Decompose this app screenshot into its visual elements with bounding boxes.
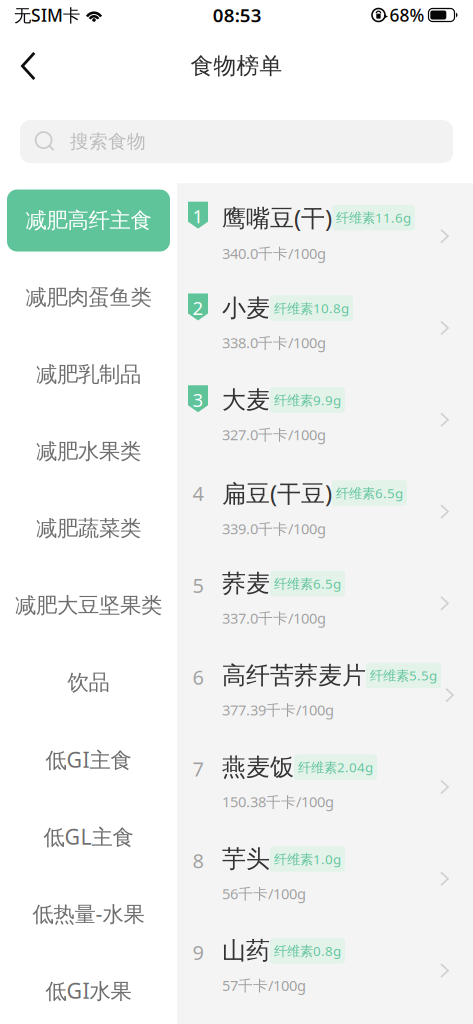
staticText: 搜索食物	[70, 130, 146, 153]
staticText: 饮品	[67, 669, 109, 696]
staticText: 150.38千卡/100g	[222, 792, 334, 811]
staticText: 340.0千卡/100g	[222, 243, 326, 263]
staticText: 377.39千卡/100g	[222, 700, 334, 720]
staticText: 纤维素5.5g	[370, 666, 437, 684]
button[interactable]: 减肥水果类	[0, 413, 177, 490]
staticText: 荞麦	[222, 569, 270, 598]
staticText: 339.0千卡/100g	[222, 519, 326, 538]
staticText: 337.0千卡/100g	[222, 608, 326, 628]
button[interactable]: 低GI主食	[0, 721, 177, 798]
staticText: 低GI水果	[45, 976, 131, 1005]
staticText: 燕麦饭	[222, 752, 294, 782]
staticText: 纤维素11.6g	[336, 209, 411, 226]
button[interactable]: 减肥蔬菜类	[0, 490, 177, 567]
staticText: 4	[192, 480, 203, 507]
button[interactable]: 8	[177, 844, 473, 936]
button[interactable]: 返回	[0, 40, 54, 91]
staticText: 减肥高纤主食	[25, 207, 151, 234]
staticText: 减肥蔬菜类	[36, 515, 141, 542]
staticText: 低热量-水果	[32, 899, 144, 928]
staticText: 纤维素6.5g	[274, 575, 341, 592]
button[interactable]: 减肥肉蛋鱼类	[0, 259, 177, 336]
button[interactable]: 9	[177, 936, 473, 1024]
staticText: 7	[192, 755, 203, 782]
staticText: 食物榜单	[190, 52, 282, 80]
button[interactable]: 2	[177, 293, 473, 385]
staticText: 纤维素1.0g	[274, 850, 341, 868]
button[interactable]: 6	[177, 661, 473, 752]
button[interactable]: 减肥高纤主食	[0, 182, 177, 259]
staticText: 2	[192, 295, 203, 320]
staticText: 鹰嘴豆(干)	[222, 202, 332, 234]
staticText: 57千卡/100g	[222, 975, 306, 995]
staticText: 小麦	[222, 293, 270, 323]
button[interactable]: 3	[177, 385, 473, 477]
staticText: 扁豆(干豆)	[222, 477, 332, 509]
staticText: 高纤苦荞麦片	[222, 661, 366, 690]
staticText: 纤维素9.9g	[274, 391, 341, 409]
staticText: 5	[192, 572, 203, 598]
staticText: 纤维素0.8g	[274, 942, 341, 960]
staticText: 低GI主食	[45, 745, 131, 774]
staticText: 减肥乳制品	[36, 361, 141, 388]
staticText: 68%	[389, 3, 424, 26]
staticText: 纤维素2.04g	[298, 758, 373, 776]
button[interactable]: 减肥乳制品	[0, 336, 177, 413]
staticText: 纤维素10.8g	[274, 299, 349, 317]
staticText: 低GL主食	[43, 822, 133, 851]
button[interactable]: 减肥大豆坚果类	[0, 567, 177, 644]
staticText: 9	[192, 939, 203, 966]
staticText: 338.0千卡/100g	[222, 333, 326, 352]
staticText: 芋头	[222, 844, 270, 874]
staticText: 8	[192, 847, 203, 874]
staticText: 6	[192, 664, 203, 690]
button[interactable]: 4	[177, 477, 473, 569]
button[interactable]: 饮品	[0, 644, 177, 721]
staticText: 山药	[222, 936, 270, 965]
staticText: 纤维素6.5g	[336, 484, 403, 502]
staticText: 3	[192, 387, 203, 412]
staticText: 08:53	[213, 3, 262, 27]
staticText: 减肥大豆坚果类	[15, 592, 162, 619]
button[interactable]: 1	[177, 202, 473, 293]
staticText: 56千卡/100g	[222, 884, 306, 903]
staticText: 减肥肉蛋鱼类	[25, 284, 151, 311]
staticText: 1	[192, 204, 203, 228]
button[interactable]: 低热量-水果	[0, 875, 177, 952]
button[interactable]: 低GI水果	[0, 952, 177, 1024]
button[interactable]: 低GL主食	[0, 798, 177, 875]
button[interactable]: 5	[177, 569, 473, 661]
staticText: 无SIM卡	[14, 3, 80, 26]
staticText: 大麦	[222, 385, 270, 415]
staticText: 减肥水果类	[36, 438, 141, 465]
button[interactable]: 7	[177, 752, 473, 844]
staticText: 327.0千卡/100g	[222, 425, 326, 444]
